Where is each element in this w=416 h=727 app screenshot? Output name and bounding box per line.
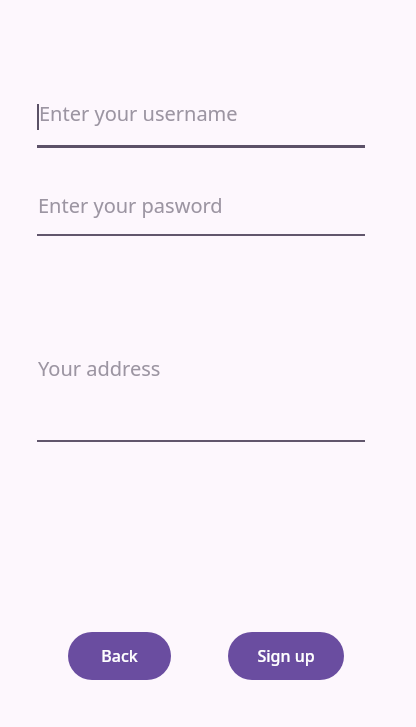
button[interactable]: Enter your username — [0, 100, 416, 134]
button[interactable]: Enter your pasword — [0, 192, 416, 220]
staticText: Your address — [38, 355, 161, 382]
button[interactable]: Back — [68, 632, 171, 680]
staticText: Enter your pasword — [38, 192, 223, 219]
staticText: Enter your username — [39, 100, 238, 127]
staticText: Sign up — [257, 645, 315, 667]
staticText: Back — [101, 645, 138, 667]
button[interactable]: Your address — [0, 355, 416, 440]
button[interactable]: Sign up — [228, 632, 344, 680]
